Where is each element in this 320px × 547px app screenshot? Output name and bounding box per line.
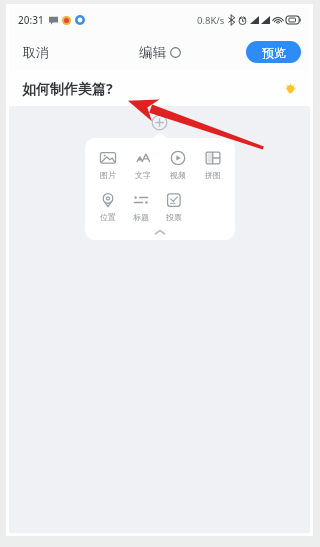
staticText: 视频 (170, 170, 186, 180)
button[interactable]: 文字 (126, 147, 159, 182)
button[interactable]: 图片 (91, 147, 124, 182)
staticText: 0.8K/s (197, 14, 225, 27)
staticText: 编辑 (139, 44, 166, 61)
staticText: 拼图 (205, 170, 221, 180)
staticText: 20:31 (18, 13, 44, 27)
button[interactable]: Add block (151, 114, 168, 131)
button[interactable]: 投票 (157, 189, 190, 224)
staticText: 预览 (262, 45, 286, 60)
staticText: 标题 (133, 212, 149, 222)
staticText: 文字 (135, 170, 151, 180)
staticText: 如何制作美篇? (22, 79, 113, 98)
button[interactable]: 预览 (246, 41, 301, 63)
button[interactable]: Tips (280, 79, 300, 99)
button[interactable]: 编辑 (135, 40, 185, 65)
staticText: 取消 (23, 44, 49, 60)
button[interactable]: 标题 (124, 189, 157, 224)
button[interactable]: 视频 (161, 147, 194, 182)
button[interactable]: 位置 (91, 189, 124, 224)
button[interactable]: Collapse (85, 226, 235, 238)
button[interactable]: 如何制作美篇? (9, 71, 310, 106)
staticText: 图片 (100, 170, 116, 180)
button[interactable]: 取消 (17, 39, 55, 65)
button[interactable]: 拼图 (196, 147, 229, 182)
staticText: 位置 (100, 212, 116, 222)
staticText: 投票 (166, 212, 182, 222)
